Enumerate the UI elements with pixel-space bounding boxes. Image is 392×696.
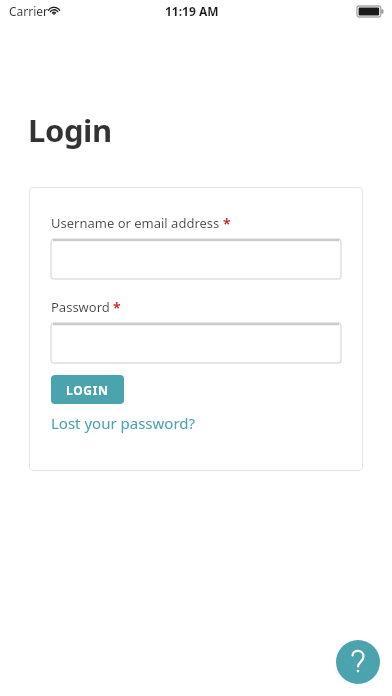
- staticText: Lost your password?: [51, 413, 196, 433]
- staticText: LOGIN: [66, 382, 109, 398]
- button[interactable]: LOGIN: [51, 375, 124, 404]
- button[interactable]: Lost your password?: [51, 411, 196, 435]
- button[interactable]: [51, 323, 341, 363]
- button[interactable]: Help: [336, 640, 380, 684]
- staticText: *: [113, 298, 121, 317]
- staticText: Password: [51, 298, 110, 316]
- staticText: *: [223, 214, 231, 233]
- staticText: Username or email address: [51, 214, 220, 232]
- staticText: Carrier: [9, 3, 49, 19]
- staticText: Login: [28, 109, 112, 151]
- button[interactable]: [51, 239, 341, 279]
- staticText: 11:19 AM: [165, 3, 219, 19]
